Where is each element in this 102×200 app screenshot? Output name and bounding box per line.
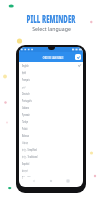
staticText: Select language (32, 25, 71, 32)
staticText: Polski (22, 127, 59, 131)
staticText: Русский (22, 113, 59, 117)
button[interactable]: Italiano (19, 104, 83, 111)
staticText: Tiếng Việt (22, 176, 59, 180)
button[interactable]: 한국어 (19, 167, 83, 174)
staticText: اردو (22, 85, 59, 89)
staticText: PILL REMINDER (26, 12, 75, 26)
staticText: CHOOSE LANGUAGE (42, 55, 64, 59)
button[interactable]: Confirm language (75, 54, 81, 60)
button[interactable]: Deutsch (19, 90, 83, 97)
button[interactable]: اردو (19, 83, 83, 90)
button[interactable]: Back (28, 177, 40, 184)
button[interactable]: Русский (19, 111, 83, 118)
button[interactable]: Türkçe (19, 118, 83, 125)
button[interactable]: English (19, 62, 83, 69)
button[interactable]: 中文 - Traditional (19, 153, 83, 160)
staticText: 한국어 (22, 169, 59, 173)
staticText: 日本語 (22, 141, 59, 145)
button[interactable]: Français (19, 76, 83, 83)
staticText: हिन्दी (22, 71, 59, 75)
button[interactable]: Bahasa (19, 132, 83, 139)
staticText: Bahasa (22, 134, 59, 138)
button[interactable]: Português (19, 97, 83, 104)
staticText: Türkçe (22, 120, 59, 124)
staticText: 中文 - Simplified (22, 148, 59, 152)
button[interactable]: 日本語 (19, 139, 83, 146)
button[interactable]: 中文 - Simplified (19, 146, 83, 153)
button[interactable]: Polski (19, 125, 83, 132)
staticText: 中文 - Traditional (22, 155, 59, 159)
staticText: Français (22, 78, 59, 82)
button[interactable]: Tiếng Việt (19, 174, 83, 181)
staticText: Deutsch (22, 92, 59, 96)
button[interactable]: Recents (62, 177, 74, 184)
button[interactable]: Home (45, 177, 57, 184)
button[interactable]: Español (19, 160, 83, 167)
staticText: Español (22, 162, 59, 166)
staticText: Português (22, 99, 59, 103)
button[interactable]: हिन्दी (19, 69, 83, 76)
staticText: English (22, 64, 57, 68)
staticText: Italiano (22, 106, 59, 110)
